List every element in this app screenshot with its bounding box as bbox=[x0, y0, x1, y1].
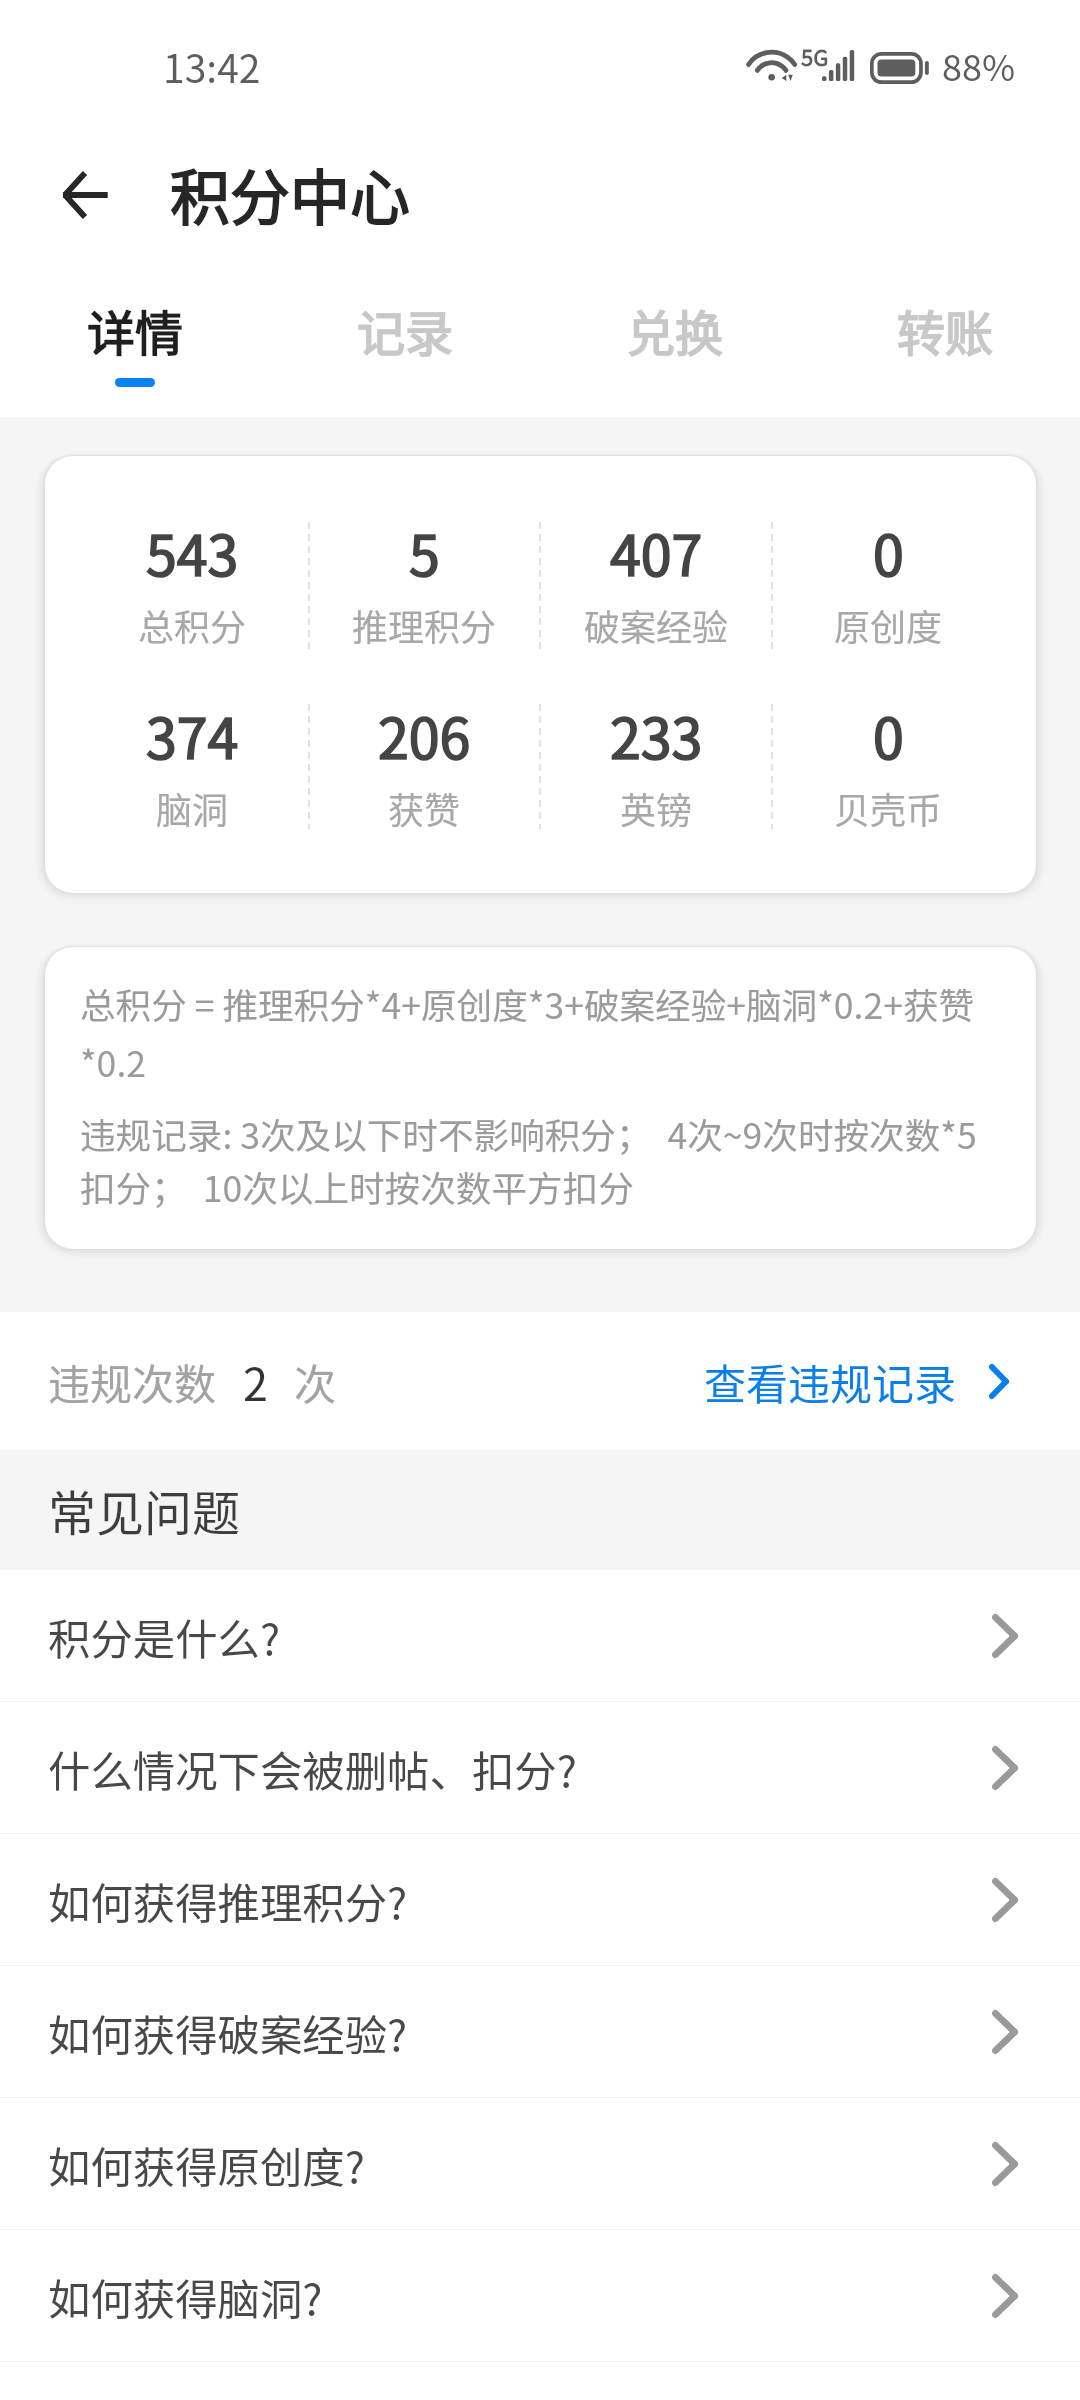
staticText: 如何获得原创度? bbox=[48, 2134, 365, 2195]
staticText: 374 bbox=[146, 695, 239, 775]
staticText: 总积分 bbox=[138, 599, 247, 651]
staticText: 破案经验 bbox=[584, 599, 729, 651]
button[interactable]: 查看违规记录 bbox=[674, 1312, 1080, 1450]
staticText: 5G bbox=[801, 40, 829, 72]
staticText: 推理积分 bbox=[352, 599, 497, 651]
staticText: 查看违规记录 bbox=[704, 1351, 957, 1412]
staticText: 5 bbox=[409, 512, 440, 592]
staticText: 2 bbox=[243, 1349, 268, 1414]
staticText: 积分是什么? bbox=[48, 1606, 281, 1667]
staticText: 常见问题 bbox=[48, 1475, 241, 1545]
staticText: 次 bbox=[294, 1351, 337, 1412]
staticText: 如何获得脑洞? bbox=[48, 2266, 323, 2327]
staticText: 如何获得推理积分? bbox=[48, 1870, 408, 1931]
staticText: 206 bbox=[378, 695, 471, 775]
staticText: 兑换 bbox=[627, 295, 724, 365]
staticText: 贝壳币 bbox=[834, 782, 943, 834]
staticText: 什么情况下会被删帖、扣分? bbox=[48, 1738, 577, 1799]
button[interactable]: 如何获得破案经验? bbox=[0, 1966, 1080, 2098]
staticText: 违规次数 bbox=[48, 1351, 217, 1412]
staticText: 0 bbox=[873, 512, 904, 592]
staticText: 违规记录: 3次及以下时不影响积分； 4次~9次时按次数*5扣分； 10次以上时… bbox=[80, 1108, 1010, 1212]
staticText: 88% bbox=[942, 39, 1016, 91]
button[interactable]: 如何获得原创度? bbox=[0, 2098, 1080, 2230]
button[interactable]: 兑换 bbox=[540, 270, 810, 417]
staticText: 详情 bbox=[87, 295, 184, 365]
staticText: 如何获得破案经验? bbox=[48, 2002, 408, 2063]
staticText: 原创度 bbox=[834, 599, 943, 651]
button[interactable]: 详情 bbox=[0, 270, 270, 417]
staticText: 转账 bbox=[897, 295, 994, 365]
staticText: 543 bbox=[146, 512, 239, 592]
staticText: 英镑 bbox=[620, 782, 693, 834]
staticText: 407 bbox=[610, 512, 703, 592]
staticText: 获赞 bbox=[388, 782, 461, 834]
staticText: 13:42 bbox=[163, 38, 261, 94]
button[interactable]: 记录 bbox=[270, 270, 540, 417]
button[interactable]: 积分是什么? bbox=[0, 1570, 1080, 1702]
staticText: 脑洞 bbox=[156, 782, 229, 834]
staticText: 0 bbox=[873, 695, 904, 775]
staticText: 233 bbox=[610, 695, 703, 775]
staticText: 记录 bbox=[357, 295, 454, 365]
button[interactable]: Back bbox=[28, 139, 140, 251]
button[interactable]: 如何获得脑洞? bbox=[0, 2230, 1080, 2362]
staticText: 总积分 = 推理积分*4+原创度*3+破案经验+脑洞*0.2+获赞*0.2 bbox=[80, 978, 1005, 1087]
button[interactable]: 什么情况下会被删帖、扣分? bbox=[0, 1702, 1080, 1834]
button[interactable]: 如何获得推理积分? bbox=[0, 1834, 1080, 1966]
staticText: 积分中心 bbox=[170, 150, 410, 237]
button[interactable]: 转账 bbox=[810, 270, 1080, 417]
